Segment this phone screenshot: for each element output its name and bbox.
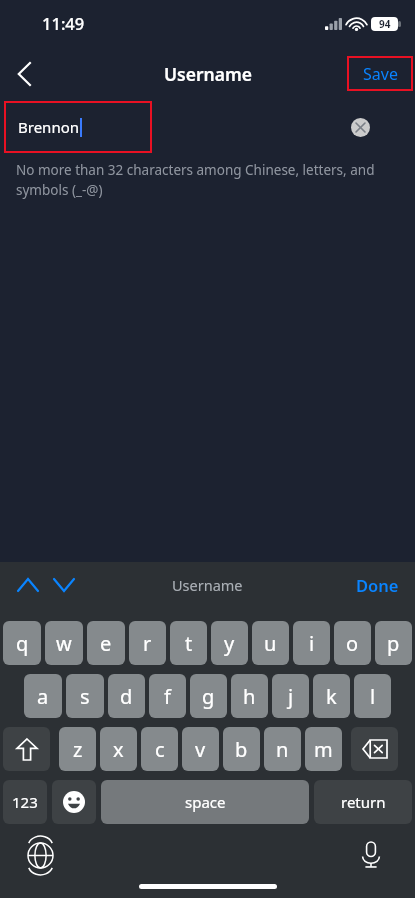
staticText: Done <box>356 574 399 596</box>
staticText: w <box>56 630 72 657</box>
button[interactable]: d <box>108 674 145 718</box>
button[interactable]: k <box>313 674 350 718</box>
button[interactable]: m <box>305 727 342 771</box>
staticText: b <box>235 736 248 763</box>
staticText: x <box>113 736 124 763</box>
staticText: d <box>120 683 133 710</box>
button[interactable]: g <box>190 674 227 718</box>
button[interactable]: Emoji <box>52 780 96 824</box>
staticText: z <box>73 736 83 763</box>
button[interactable]: Change keyboard <box>22 837 58 873</box>
staticText: Save <box>363 63 398 85</box>
staticText: g <box>202 683 215 710</box>
staticText: v <box>195 736 206 763</box>
button[interactable]: e <box>87 621 125 665</box>
staticText: i <box>309 630 315 657</box>
button[interactable]: u <box>252 621 289 665</box>
button[interactable]: Brennon <box>4 101 152 153</box>
staticText: o <box>346 630 359 657</box>
staticText: m <box>314 736 333 763</box>
button[interactable]: l <box>354 674 391 718</box>
staticText: p <box>387 630 400 657</box>
staticText: h <box>243 683 256 710</box>
staticText: return <box>341 792 386 812</box>
staticText: k <box>326 683 337 710</box>
button[interactable]: Backspace <box>351 727 398 771</box>
button[interactable]: z <box>59 727 96 771</box>
staticText: Username <box>172 575 243 595</box>
button[interactable]: return <box>314 780 412 824</box>
staticText: c <box>155 736 165 763</box>
staticText: l <box>370 683 376 710</box>
staticText: Username <box>164 62 252 86</box>
button[interactable]: w <box>45 621 83 665</box>
button[interactable]: p <box>375 621 412 665</box>
button[interactable]: h <box>231 674 268 718</box>
staticText: y <box>224 630 235 657</box>
button[interactable]: t <box>170 621 207 665</box>
button[interactable]: Next field <box>46 567 82 603</box>
button[interactable]: i <box>293 621 330 665</box>
button[interactable]: c <box>141 727 178 771</box>
button[interactable]: v <box>182 727 219 771</box>
button[interactable]: o <box>334 621 371 665</box>
staticText: 123 <box>12 792 38 812</box>
staticText: j <box>288 683 294 710</box>
staticText: space <box>185 792 226 812</box>
button[interactable]: x <box>100 727 137 771</box>
staticText: a <box>37 683 49 710</box>
staticText: e <box>100 630 112 657</box>
button[interactable]: Dictation <box>353 837 389 873</box>
staticText: f <box>164 683 171 710</box>
button[interactable]: Done <box>356 574 399 596</box>
button[interactable]: a <box>24 674 62 718</box>
staticText: n <box>276 736 289 763</box>
button[interactable]: j <box>272 674 309 718</box>
button[interactable]: s <box>66 674 104 718</box>
button[interactable]: 123 <box>3 780 47 824</box>
staticText: u <box>264 630 277 657</box>
staticText: q <box>16 630 29 657</box>
staticText: 11:49 <box>42 12 85 34</box>
staticText: r <box>143 630 152 657</box>
button[interactable]: Save <box>347 56 413 91</box>
button[interactable]: n <box>264 727 301 771</box>
button[interactable]: f <box>149 674 186 718</box>
button[interactable]: b <box>223 727 260 771</box>
button[interactable]: space <box>101 780 309 824</box>
button[interactable]: y <box>211 621 248 665</box>
button[interactable]: Clear text <box>343 110 377 144</box>
button[interactable]: Previous field <box>10 567 46 603</box>
staticText: Brennon <box>18 117 79 137</box>
button[interactable]: q <box>3 621 41 665</box>
button[interactable]: Shift <box>3 727 50 771</box>
staticText: t <box>185 630 193 657</box>
staticText: No more than 32 characters among Chinese… <box>16 161 395 199</box>
button[interactable]: r <box>129 621 166 665</box>
staticText: s <box>80 683 90 710</box>
staticText: 94 <box>379 17 391 31</box>
button[interactable]: Back <box>0 50 48 98</box>
